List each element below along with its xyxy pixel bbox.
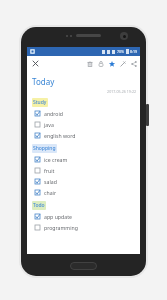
button[interactable]: Todo [32,201,46,210]
staticText: 70% [117,49,125,54]
button[interactable]: app update [32,211,136,222]
staticText: chair [44,189,57,196]
button[interactable]: Lock [95,58,106,69]
staticText: Todo [33,202,45,209]
staticText: Study [33,99,47,106]
staticText: 8:19 [130,49,138,54]
staticText: ice cream [44,156,68,163]
staticText: english word [44,132,76,139]
button[interactable]: Edit [117,58,128,69]
button[interactable]: chair [32,187,136,198]
staticText: Today [32,76,55,87]
button[interactable]: Home [70,262,97,270]
staticText: Shopping [33,145,56,152]
button[interactable]: Delete [84,58,95,69]
button[interactable]: Study [32,98,48,107]
button[interactable]: java [32,119,136,130]
staticText: android [44,110,64,117]
staticText: fruit [44,167,55,174]
button[interactable]: Close [30,58,41,69]
staticText: programming [44,224,78,231]
button[interactable]: programming [32,222,136,233]
button[interactable]: Share [128,58,139,69]
button[interactable]: android [32,108,136,119]
button[interactable]: Favorite [106,58,117,69]
button[interactable]: ice cream [32,154,136,165]
button[interactable]: fruit [32,165,136,176]
button[interactable]: english word [32,130,136,141]
button[interactable]: salad [32,176,136,187]
button[interactable]: Shopping [32,144,57,153]
staticText: salad [44,178,57,185]
staticText: java [44,121,54,128]
staticText: app update [44,213,72,220]
staticText: 2017-05-26 19:22 [32,89,136,94]
